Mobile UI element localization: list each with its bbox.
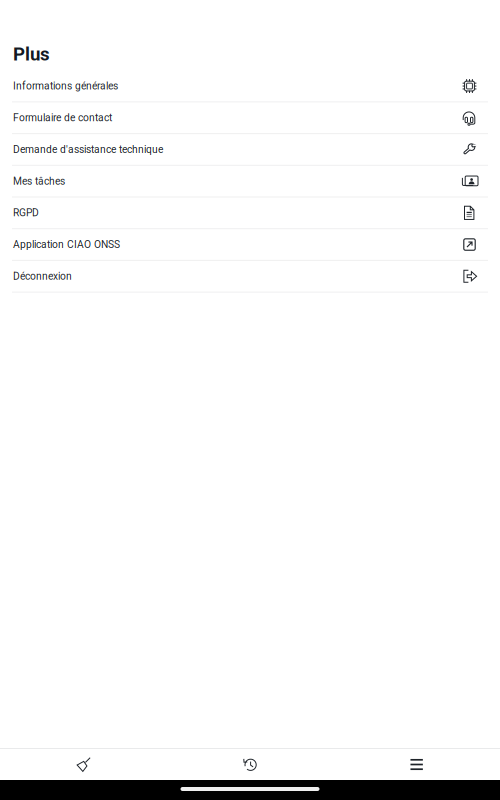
button[interactable]: Nettoyage [0, 749, 167, 780]
staticText: Application CIAO ONSS [13, 238, 120, 250]
button[interactable]: Plus [333, 749, 500, 780]
button[interactable]: Demande d'assistance technique [0, 134, 500, 166]
staticText: RGPD [13, 207, 39, 219]
button[interactable]: Formulaire de contact [0, 102, 500, 134]
staticText: Plus [13, 43, 50, 65]
staticText: Demande d'assistance technique [13, 143, 163, 155]
button[interactable]: Déconnexion [0, 261, 500, 293]
staticText: Informations générales [13, 80, 118, 92]
staticText: Déconnexion [13, 270, 72, 282]
staticText: Mes tâches [13, 175, 65, 187]
button[interactable]: Mes tâches [0, 166, 500, 197]
button[interactable]: Informations générales [0, 71, 500, 102]
button[interactable]: Application CIAO ONSS [0, 229, 500, 261]
button[interactable]: Historique [167, 749, 333, 780]
staticText: Formulaire de contact [13, 112, 112, 124]
button[interactable]: RGPD [0, 197, 500, 229]
